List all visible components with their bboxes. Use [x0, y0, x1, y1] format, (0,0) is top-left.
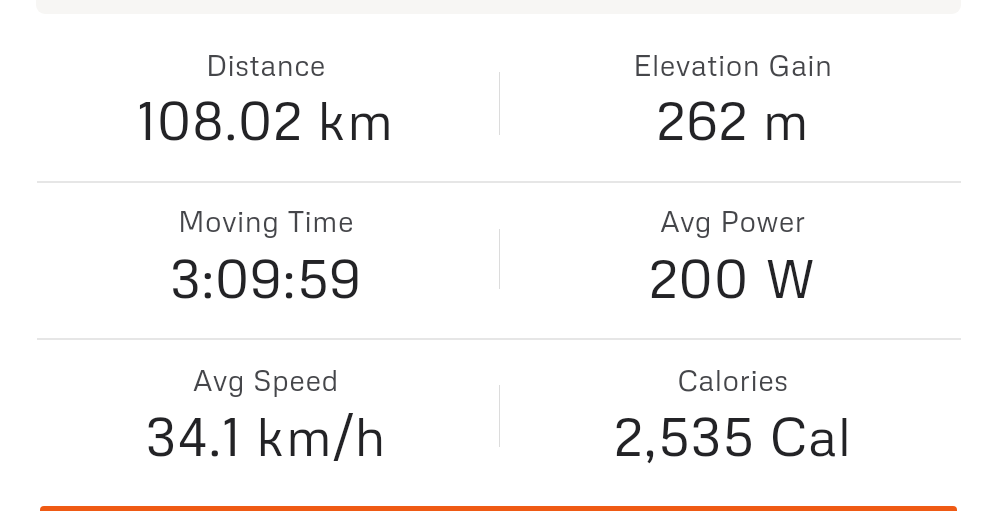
staticText: 34.1 km/h [66, 403, 466, 468]
button[interactable]: Elevation Gain [533, 47, 933, 150]
button[interactable]: Avg Speed [66, 362, 466, 466]
button[interactable]: Open next section [40, 506, 957, 511]
staticText: Avg Speed [66, 362, 466, 398]
staticText: Avg Power [533, 203, 933, 239]
button[interactable]: Distance [66, 47, 466, 150]
button[interactable]: Calories [533, 362, 933, 466]
staticText: 200 W [533, 245, 933, 310]
staticText: 108.02 km [66, 87, 466, 152]
staticText: Moving Time [66, 203, 466, 239]
staticText: Elevation Gain [533, 47, 933, 83]
button[interactable]: Moving Time [66, 203, 466, 308]
button[interactable]: Avg Power [533, 203, 933, 308]
staticText: 3:09:59 [66, 245, 466, 310]
staticText: 262 m [533, 87, 933, 152]
staticText: Calories [533, 362, 933, 398]
staticText: Distance [66, 47, 466, 83]
staticText: 2,535 Cal [533, 403, 933, 468]
